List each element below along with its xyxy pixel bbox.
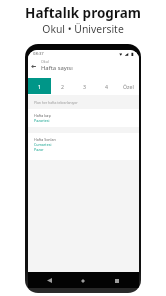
staticText: 1 — [38, 83, 41, 90]
staticText: 2 — [61, 83, 64, 90]
button[interactable]: 2 — [51, 78, 73, 94]
staticText: Plan her hafta tekrarlanıyor — [34, 100, 78, 105]
button[interactable]: Home — [75, 274, 91, 287]
staticText: Özel — [123, 83, 134, 90]
staticText: Pazartesi — [34, 118, 50, 123]
staticText: Pazar — [34, 147, 44, 152]
button[interactable]: 3 — [73, 78, 95, 94]
staticText: 08:37 — [33, 51, 44, 57]
button[interactable]: Back — [41, 274, 57, 287]
button[interactable]: Özel — [117, 78, 139, 94]
button[interactable]: 4 — [95, 78, 117, 94]
staticText: Haftalık program — [25, 4, 141, 22]
staticText: Hafta Sonları — [34, 137, 56, 142]
staticText: Okul • Üniversite — [42, 22, 124, 36]
staticText: 4 — [105, 83, 108, 90]
staticText: Cumartesi — [34, 142, 52, 147]
staticText: Hafta başı — [34, 113, 52, 118]
button[interactable]: 1 — [28, 78, 51, 94]
button[interactable]: Recents — [109, 274, 125, 287]
staticText: Okul — [41, 59, 49, 64]
staticText: Hafta sayısı — [41, 64, 73, 72]
staticText: 3 — [83, 83, 86, 90]
button[interactable]: Back — [29, 62, 38, 71]
